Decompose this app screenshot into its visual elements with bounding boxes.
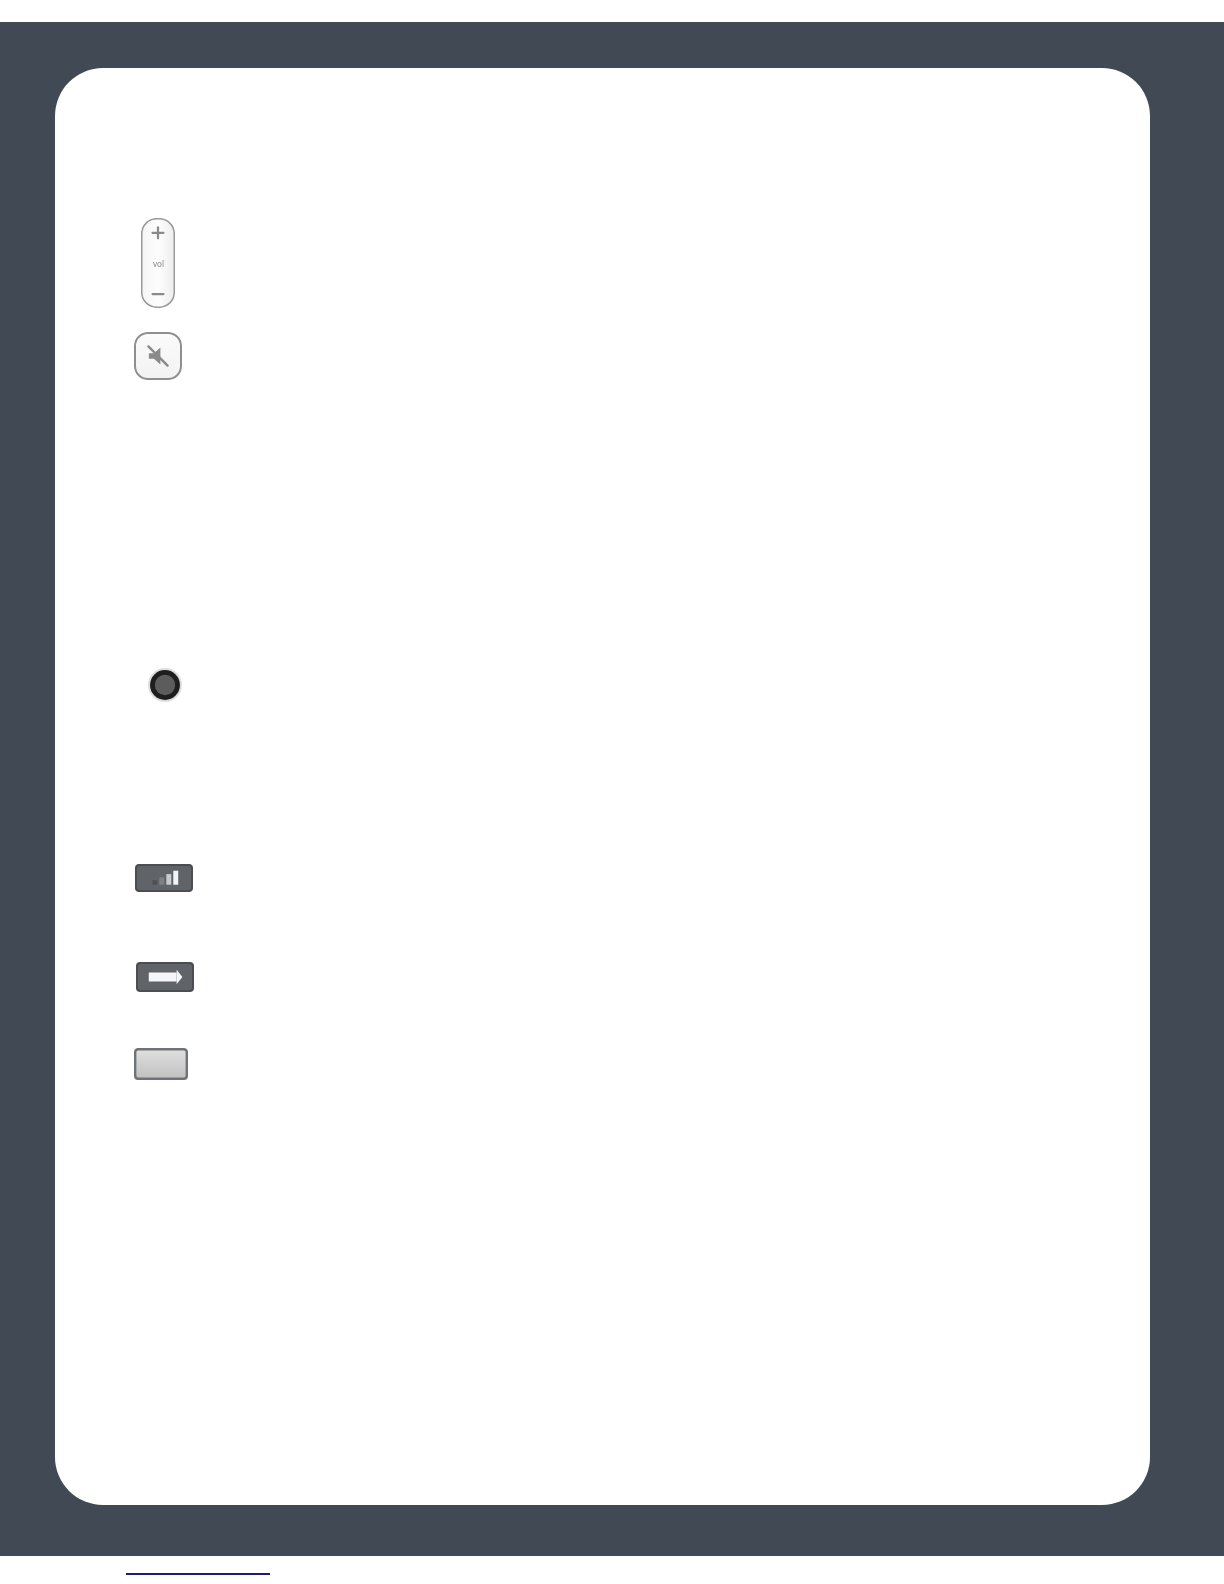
staticText: vol — [153, 258, 164, 269]
button[interactable]: Volume rocker — [141, 218, 175, 308]
button[interactable]: Button — [134, 1048, 188, 1080]
button[interactable]: Record — [148, 668, 182, 702]
button[interactable]: Signal strength — [135, 864, 193, 892]
button[interactable]: Battery — [136, 962, 194, 992]
button[interactable]: Mute — [134, 332, 182, 380]
